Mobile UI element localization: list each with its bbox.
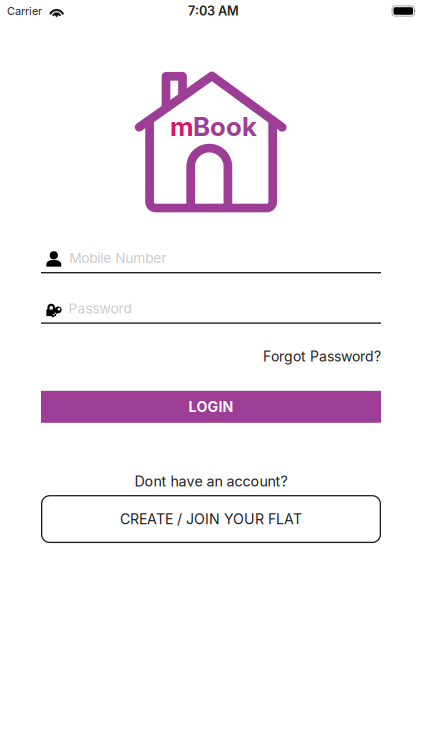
- staticText: Forgot Password?: [263, 348, 381, 365]
- staticText: 7:03 AM: [188, 3, 239, 19]
- staticText: Book: [193, 111, 257, 142]
- button[interactable]: Forgot Password?: [0, 345, 422, 368]
- staticText: Carrier: [7, 4, 42, 18]
- button[interactable]: CREATE / JOIN YOUR FLAT: [0, 495, 422, 543]
- staticText: Password: [68, 300, 131, 317]
- button[interactable]: LOGIN: [0, 391, 422, 423]
- staticText: m: [170, 111, 193, 142]
- staticText: Dont have an account?: [134, 473, 287, 490]
- staticText: LOGIN: [188, 398, 233, 415]
- staticText: Mobile Number: [69, 250, 166, 266]
- staticText: CREATE / JOIN YOUR FLAT: [120, 510, 302, 528]
